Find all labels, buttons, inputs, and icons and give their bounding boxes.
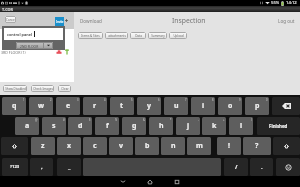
button[interactable]: .: [250, 158, 273, 176]
staticText: &: [143, 118, 145, 122]
button[interactable]: control panel: [4, 28, 63, 40]
staticText: Data: [135, 34, 142, 38]
staticText: p: [255, 101, 260, 111]
button[interactable]: Data: [130, 32, 146, 39]
button[interactable]: b: [135, 137, 159, 155]
staticText: 3: [77, 98, 79, 102]
staticText: *: [170, 118, 172, 122]
staticText: 9: [239, 98, 241, 102]
staticText: z: [41, 141, 45, 151]
staticText: (: [251, 118, 252, 122]
button[interactable]: ?: [243, 137, 271, 155]
button[interactable]: 2ND FLOOR: [16, 42, 53, 49]
staticText: Clear: [61, 87, 69, 91]
button[interactable]: Upload: [169, 32, 187, 39]
button[interactable]: !: [217, 137, 241, 155]
button[interactable]: c: [83, 137, 107, 155]
button[interactable]: k: [202, 117, 226, 135]
staticText: -: [198, 118, 199, 122]
button[interactable]: Recents: [166, 176, 188, 187]
staticText: v: [119, 141, 123, 151]
staticText: q: [12, 101, 17, 111]
button[interactable]: Home: [139, 176, 161, 187]
staticText: g: [132, 121, 137, 131]
button[interactable]: g: [122, 117, 146, 135]
staticText: Upload: [173, 34, 184, 38]
button[interactable]: u: [164, 97, 188, 115]
button[interactable]: w: [29, 97, 53, 115]
staticText: Cancel: [6, 18, 16, 22]
button[interactable]: y: [137, 97, 161, 115]
staticText: 4: [104, 98, 106, 102]
button[interactable]: t: [110, 97, 134, 115]
button[interactable]: Clear: [58, 85, 71, 92]
button[interactable]: Check Images: [31, 85, 54, 92]
staticText: 2: [50, 98, 52, 102]
button[interactable]: j: [176, 117, 200, 135]
staticText: l: [240, 121, 243, 131]
button[interactable]: l: [229, 117, 253, 135]
staticText: Summary: [151, 34, 165, 38]
button[interactable]: x: [57, 137, 81, 155]
button[interactable]: ?123: [2, 158, 28, 176]
button[interactable]: Download: [80, 16, 102, 25]
button[interactable]: Invite: [55, 17, 64, 26]
button[interactable]: /: [224, 158, 248, 176]
button[interactable]: a: [15, 117, 39, 135]
button[interactable]: attachments: [105, 32, 128, 39]
staticText: j: [187, 121, 190, 131]
button[interactable]: Emoji: [276, 158, 300, 176]
staticText: b: [145, 141, 150, 151]
button[interactable]: Show Disabled: [3, 85, 27, 92]
staticText: T-COR: [2, 7, 14, 12]
staticText: a: [25, 121, 30, 131]
staticText: 2ND FLOOR: [20, 44, 39, 48]
button[interactable]: o: [218, 97, 242, 115]
button[interactable]: 3RD FLOOR (1): [0, 49, 74, 55]
button[interactable]: Back: [112, 176, 134, 187]
button[interactable]: n: [161, 137, 185, 155]
staticText: 14:12: [286, 0, 297, 6]
staticText: c: [93, 141, 97, 151]
button[interactable]: _: [57, 158, 81, 176]
button[interactable]: r: [83, 97, 107, 115]
staticText: m: [196, 141, 203, 151]
staticText: 6: [158, 98, 160, 102]
staticText: k: [212, 121, 217, 131]
button[interactable]: i: [191, 97, 215, 115]
button[interactable]: Backspace: [272, 97, 300, 115]
button[interactable]: Cancel: [5, 16, 16, 23]
button[interactable]: Shift: [273, 137, 300, 155]
button[interactable]: m: [187, 137, 211, 155]
button[interactable]: q: [2, 97, 26, 115]
button[interactable]: s: [42, 117, 66, 135]
button[interactable]: z: [31, 137, 55, 155]
button[interactable]: d: [68, 117, 92, 135]
staticText: y: [147, 101, 151, 111]
button[interactable]: Add: [64, 18, 69, 23]
staticText: control panel: [7, 32, 33, 37]
button[interactable]: e: [56, 97, 80, 115]
staticText: 3RD FLOOR (1): [1, 50, 26, 55]
staticText: $: [89, 118, 91, 122]
staticText: Download: [80, 18, 102, 24]
button[interactable]: ,: [30, 158, 53, 176]
button[interactable]: h: [149, 117, 173, 135]
button[interactable]: Shift: [1, 137, 28, 155]
staticText: Log out: [278, 18, 295, 24]
button[interactable]: Finished: [257, 117, 300, 135]
button[interactable]: Summary: [148, 32, 167, 39]
button[interactable]: Items & Sites: [78, 32, 103, 39]
button[interactable]: Log out: [278, 16, 295, 25]
staticText: Invite: [56, 20, 64, 24]
staticText: @: [35, 118, 38, 122]
staticText: Finished: [269, 123, 288, 129]
staticText: f: [106, 121, 109, 131]
staticText: 1: [23, 98, 25, 102]
button[interactable]: p: [245, 97, 269, 115]
staticText: 55%: [271, 0, 280, 6]
button[interactable]: f: [95, 117, 119, 135]
button[interactable]: v: [109, 137, 133, 155]
staticText: i: [202, 101, 205, 111]
